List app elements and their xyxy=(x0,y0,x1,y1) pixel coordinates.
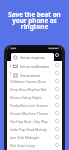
button[interactable]: Set as ringtone xyxy=(11,53,54,62)
staticText: Set as alarm xyxy=(20,73,41,78)
button[interactable]: Electro Swing Night xyxy=(7,93,62,101)
button[interactable]: Set as notification xyxy=(11,62,54,71)
staticText: Kick Snare Loop xyxy=(10,143,36,148)
staticText: Chillwave Sunset Drive xyxy=(10,79,47,84)
button[interactable]: Bounce Drop - Nova Beat xyxy=(7,69,62,77)
button[interactable]: Funky Bass Line Groove xyxy=(7,101,62,109)
staticText: Deep Bass Rhythm Mix xyxy=(10,87,47,92)
button[interactable]: Chillwave Sunset Drive xyxy=(7,77,62,85)
button[interactable]: Acoustic Chill - Sunrise xyxy=(7,61,62,69)
staticText: Set as notification xyxy=(20,64,50,69)
button[interactable]: Kick Snare Loop xyxy=(7,141,62,149)
staticText: Acoustic Chill - Sunrise xyxy=(10,63,46,68)
staticText: Electro Swing Night xyxy=(10,95,42,100)
staticText: Hip Hop Beat - Hey Way xyxy=(10,119,48,124)
button[interactable]: Groove Machine Theme xyxy=(7,109,62,117)
staticText: Bounce Drop - Nova Beat xyxy=(10,71,50,76)
button[interactable]: Set as alarm xyxy=(11,71,54,80)
button[interactable]: Indie Pop Hook Melody xyxy=(7,125,62,133)
staticText: Funky Bass Line Groove xyxy=(10,103,48,108)
staticText: Indie Pop Hook Melody xyxy=(10,127,48,132)
staticText: Save the beat on your phone as ringtone xyxy=(0,10,69,31)
staticText: Jazz Club Midnight xyxy=(10,135,40,140)
staticText: Groove Machine Theme xyxy=(10,111,48,116)
button[interactable]: Hip Hop Beat - Hey Way xyxy=(7,117,62,125)
button[interactable]: Deep Bass Rhythm Mix xyxy=(7,85,62,93)
button[interactable]: Account xyxy=(55,53,59,57)
staticText: Set as ringtone xyxy=(20,55,45,60)
button[interactable]: Jazz Club Midnight xyxy=(7,133,62,141)
